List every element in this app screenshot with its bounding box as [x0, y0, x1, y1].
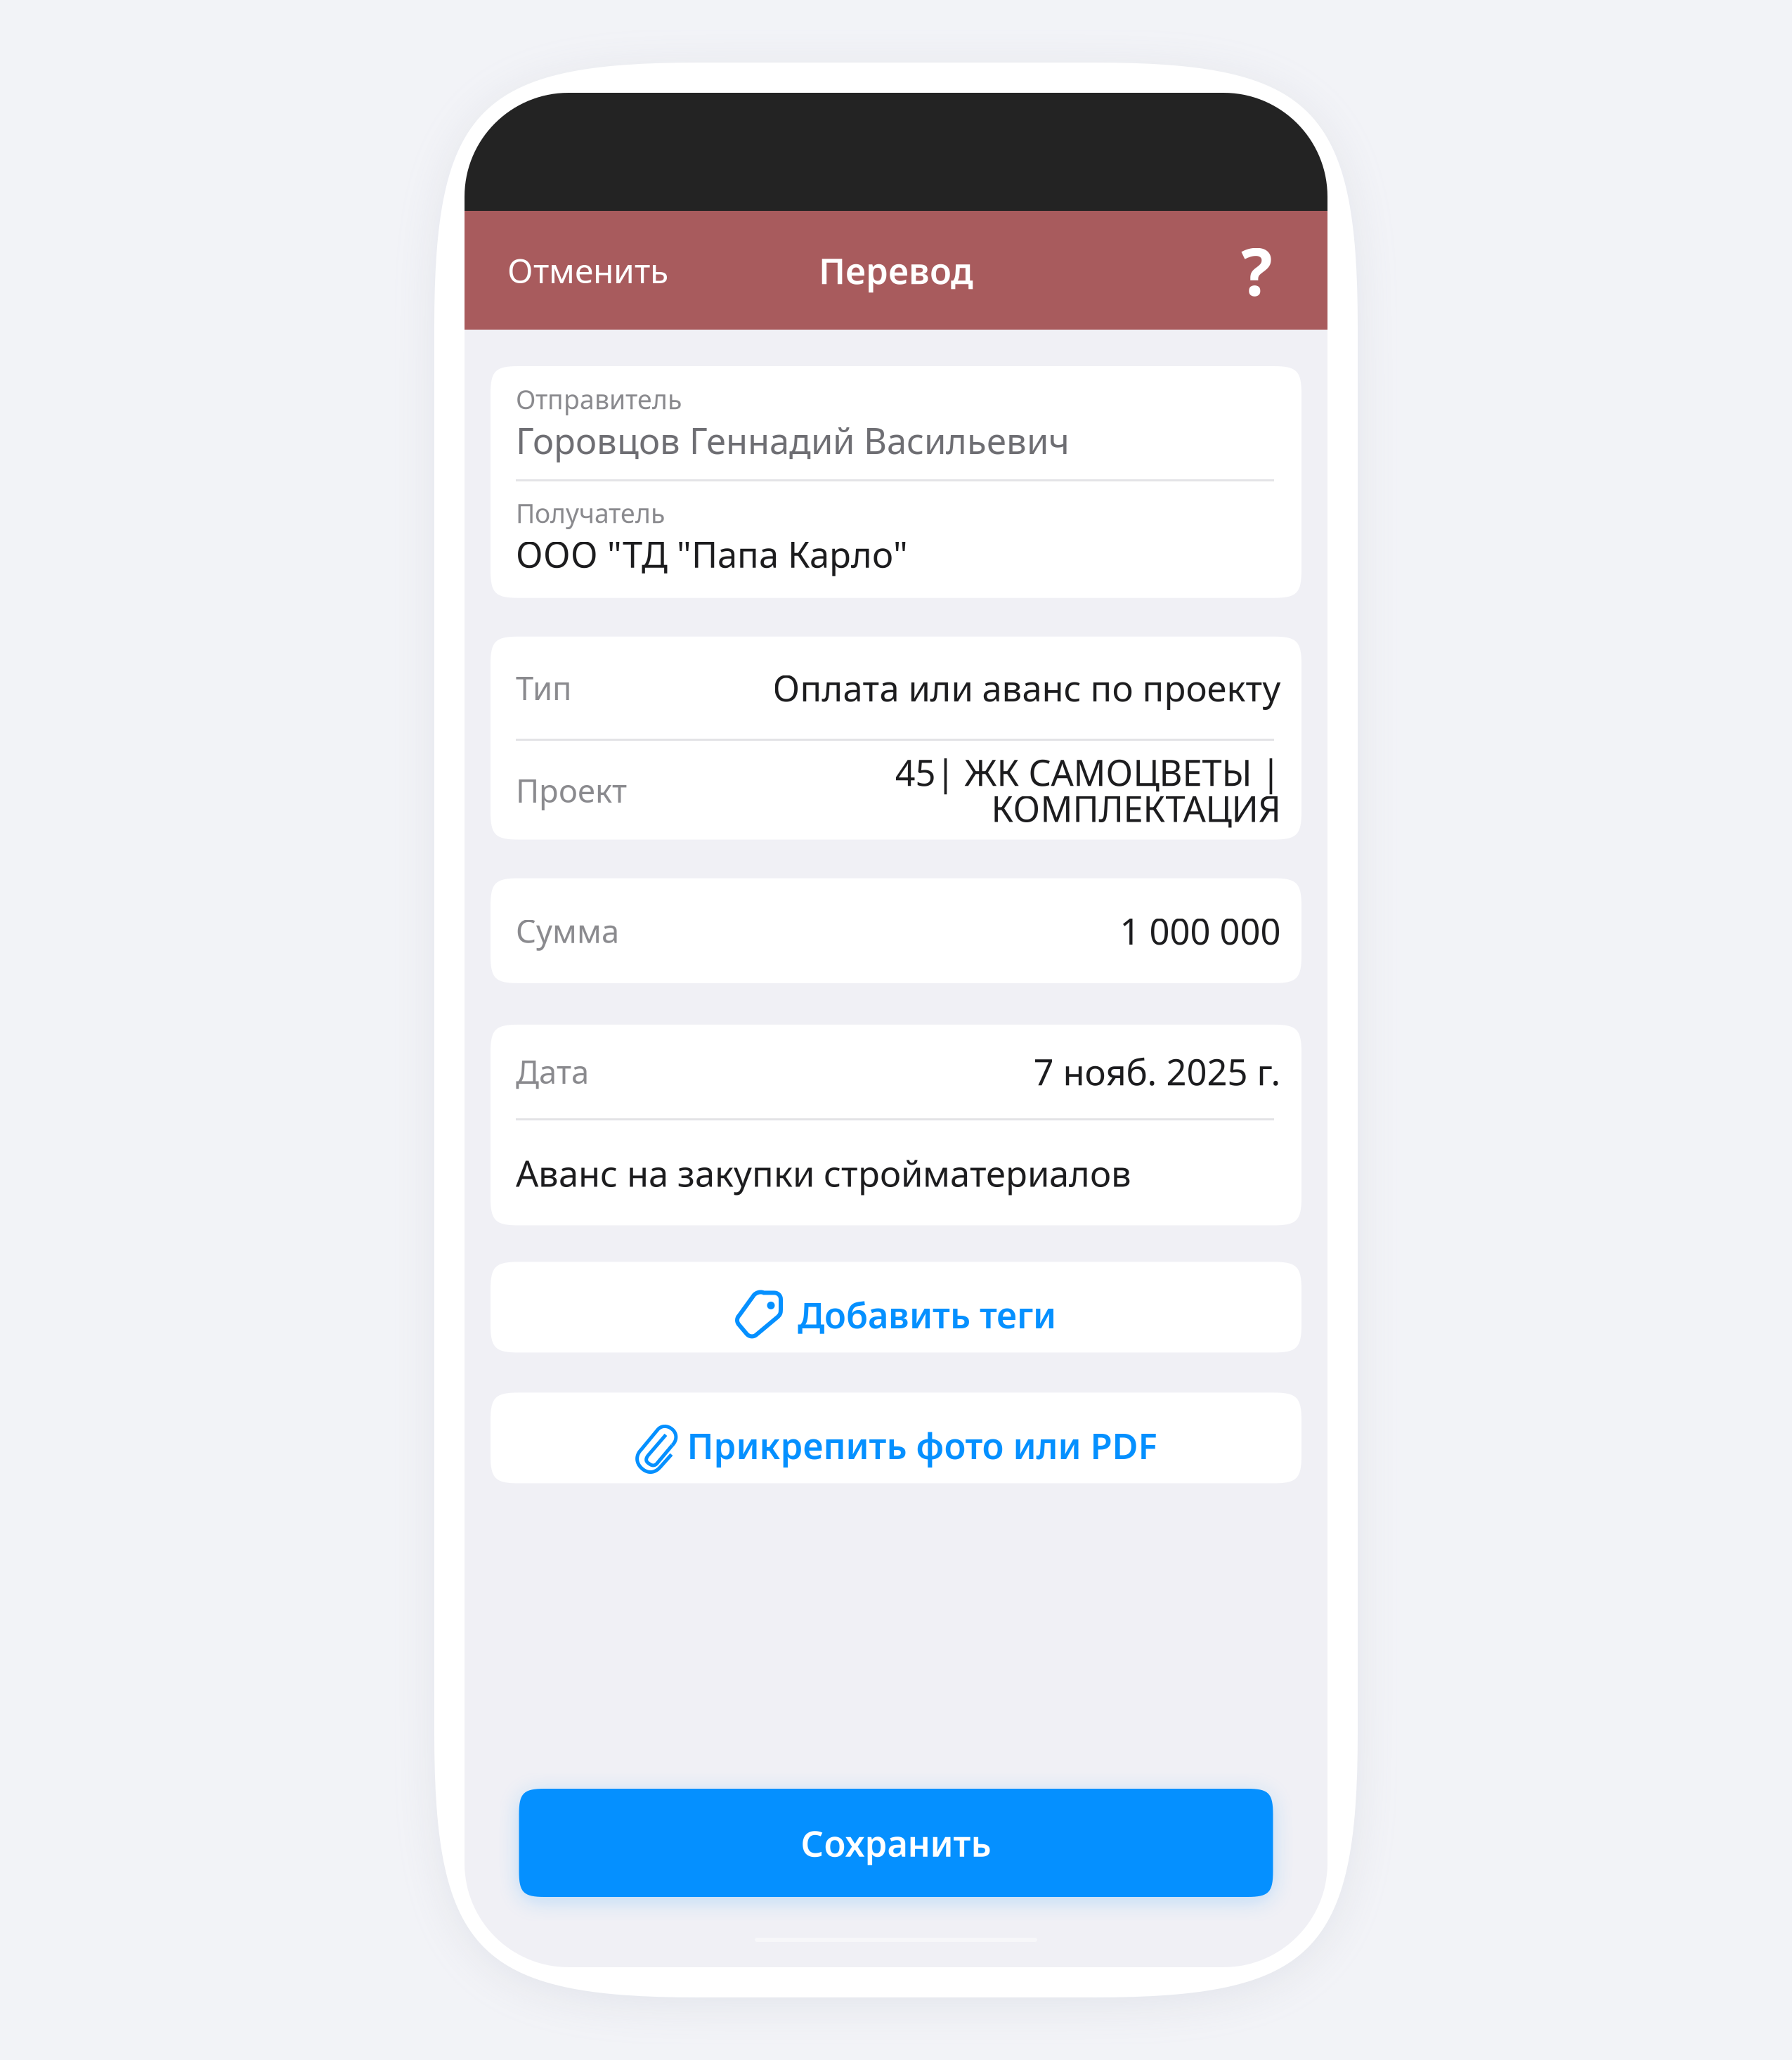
staticText: 45| ЖК САМОЦВЕТЫ | КОМПЛЕКТАЦИЯ — [895, 749, 1280, 832]
staticText: Дата — [516, 1050, 589, 1093]
button[interactable]: Добавить теги — [491, 1262, 1301, 1353]
staticText: Прикрепить фото или PDF — [687, 1422, 1157, 1469]
staticText: Проект — [516, 769, 627, 811]
staticText: Перевод — [819, 247, 973, 294]
staticText: Горовцов Геннадий Васильевич — [516, 416, 1070, 464]
staticText: ? — [1241, 227, 1273, 314]
staticText: Оплата или аванс по проекту — [772, 664, 1280, 711]
staticText: Тип — [516, 666, 571, 709]
button[interactable]: Сохранить — [519, 1789, 1273, 1897]
staticText: Получатель — [516, 495, 665, 530]
staticText: Сумма — [516, 910, 619, 952]
staticText: Отменить — [507, 248, 668, 293]
staticText: 1 000 000 — [1119, 907, 1280, 954]
staticText: Добавить теги — [798, 1291, 1056, 1338]
button[interactable]: Отменить — [465, 223, 689, 318]
staticText: Отправитель — [516, 382, 682, 416]
staticText: 7 нояб. 2025 г. — [1033, 1048, 1280, 1095]
staticText: Аванс на закупки стройматериалов — [516, 1149, 1131, 1197]
button[interactable]: Прикрепить фото или PDF — [491, 1393, 1301, 1483]
staticText: ООО "ТД "Папа Карло" — [516, 530, 908, 578]
staticText: Сохранить — [801, 1819, 991, 1867]
button[interactable]: Справка — [1220, 210, 1327, 331]
